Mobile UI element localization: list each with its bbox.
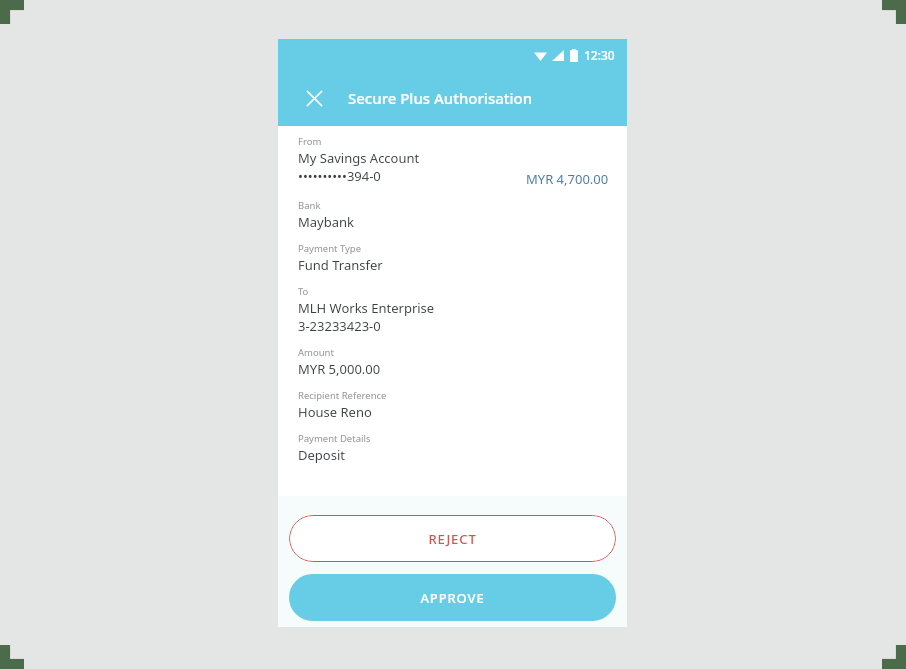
button[interactable]: APPROVE xyxy=(289,574,616,621)
staticText: REJECT xyxy=(428,530,477,548)
staticText: ••••••••••394-0 xyxy=(298,167,381,185)
staticText: MLH Works Enterprise xyxy=(298,299,435,317)
staticText: Maybank xyxy=(298,213,354,231)
staticText: Recipient Reference xyxy=(298,389,387,402)
staticText: My Savings Account xyxy=(298,149,420,167)
staticText: 3-23233423-0 xyxy=(298,317,381,335)
staticText: 12:30 xyxy=(584,47,615,63)
staticText: Amount xyxy=(298,346,334,359)
staticText: APPROVE xyxy=(420,589,485,607)
staticText: MYR 4,700.00 xyxy=(526,170,609,188)
staticText: Payment Type xyxy=(298,242,362,255)
staticText: House Reno xyxy=(298,403,372,421)
staticText: To xyxy=(298,285,309,298)
staticText: MYR 5,000.00 xyxy=(298,360,381,378)
staticText: Deposit xyxy=(298,446,345,464)
staticText: Bank xyxy=(298,199,321,212)
staticText: Secure Plus Authorisation xyxy=(348,88,533,108)
staticText: Payment Details xyxy=(298,432,371,445)
staticText: Fund Transfer xyxy=(298,256,383,274)
button[interactable]: Close xyxy=(298,82,330,114)
staticText: From xyxy=(298,135,322,148)
button[interactable]: REJECT xyxy=(289,515,616,562)
